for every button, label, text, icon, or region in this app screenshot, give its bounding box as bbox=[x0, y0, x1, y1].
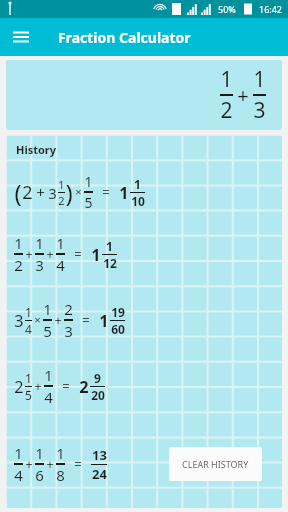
staticText: CLEAR HISTORY bbox=[182, 458, 249, 470]
staticText: 1 bbox=[56, 443, 65, 463]
staticText: 50% bbox=[218, 3, 236, 15]
staticText: + bbox=[237, 82, 249, 109]
staticText: + bbox=[34, 378, 42, 395]
staticText: 4 bbox=[56, 255, 65, 275]
staticText: + bbox=[25, 456, 33, 473]
staticText: ) bbox=[65, 176, 73, 209]
staticText: ( bbox=[14, 176, 22, 209]
staticText: + bbox=[46, 456, 54, 473]
staticText: 3 bbox=[64, 321, 73, 341]
staticText: 1 bbox=[84, 172, 93, 191]
staticText: 2 bbox=[79, 376, 89, 398]
staticText: = bbox=[82, 311, 90, 329]
staticText: 1 bbox=[58, 177, 65, 192]
staticText: 1 bbox=[25, 370, 32, 386]
button[interactable]: CLEAR HISTORY bbox=[169, 447, 262, 481]
staticText: 20 bbox=[91, 387, 105, 403]
staticText: 5 bbox=[43, 321, 52, 341]
staticText: 2 bbox=[220, 96, 233, 125]
staticText: 19 bbox=[111, 304, 125, 320]
staticText: 1 bbox=[91, 244, 101, 266]
staticText: 3 bbox=[35, 255, 44, 275]
staticText: Fraction Calculator bbox=[58, 28, 191, 47]
staticText: 1 bbox=[119, 182, 129, 204]
staticText: + bbox=[36, 182, 45, 203]
staticText: + bbox=[54, 312, 62, 329]
staticText: 1 bbox=[35, 443, 44, 463]
staticText: 3 bbox=[14, 310, 24, 332]
staticText: 2 bbox=[14, 376, 24, 398]
button[interactable]: Open navigation menu bbox=[8, 24, 34, 50]
staticText: 1 bbox=[56, 233, 65, 253]
staticText: 4 bbox=[25, 321, 32, 337]
staticText: 9 bbox=[94, 370, 101, 386]
staticText: = bbox=[62, 377, 70, 395]
staticText: 2 bbox=[22, 180, 33, 205]
staticText: 16:42 bbox=[259, 3, 283, 15]
staticText: 1 bbox=[253, 65, 266, 94]
staticText: + bbox=[46, 246, 54, 263]
staticText: 1 bbox=[25, 304, 32, 320]
staticText: 4 bbox=[14, 465, 23, 485]
staticText: 2 bbox=[58, 193, 65, 208]
staticText: 5 bbox=[25, 387, 32, 403]
staticText: + bbox=[25, 246, 33, 263]
staticText: 13 bbox=[92, 446, 107, 464]
staticText: History bbox=[16, 142, 57, 157]
staticText: 1 bbox=[43, 299, 52, 319]
staticText: 2 bbox=[64, 299, 73, 319]
staticText: 12 bbox=[103, 255, 117, 271]
staticText: 3 bbox=[253, 96, 266, 125]
staticText: 2 bbox=[14, 255, 23, 275]
staticText: = bbox=[102, 183, 110, 201]
staticText: × bbox=[34, 312, 41, 328]
staticText: 60 bbox=[111, 321, 125, 337]
button[interactable]: 1 bbox=[6, 60, 282, 130]
staticText: 3 bbox=[48, 183, 57, 203]
staticText: 1 bbox=[220, 65, 233, 94]
staticText: 1 bbox=[35, 233, 44, 253]
staticText: × bbox=[75, 184, 82, 200]
staticText: 6 bbox=[35, 465, 44, 485]
staticText: = bbox=[74, 245, 82, 263]
staticText: 24 bbox=[92, 465, 107, 483]
staticText: 4 bbox=[44, 387, 53, 407]
staticText: 5 bbox=[84, 193, 93, 212]
staticText: = bbox=[74, 455, 82, 473]
staticText: 1 bbox=[106, 238, 113, 254]
staticText: 1 bbox=[99, 310, 109, 332]
staticText: 10 bbox=[131, 193, 145, 209]
staticText: 1 bbox=[44, 365, 53, 385]
staticText: 8 bbox=[56, 465, 65, 485]
staticText: 1 bbox=[134, 176, 141, 192]
staticText: 1 bbox=[14, 443, 23, 463]
staticText: 1 bbox=[14, 233, 23, 253]
